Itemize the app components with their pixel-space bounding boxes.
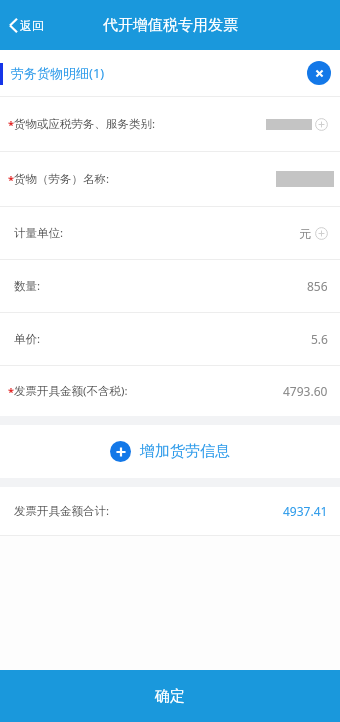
button[interactable]: 单价: (0, 313, 340, 365)
staticText: 5.6 (311, 331, 328, 347)
button[interactable]: * (0, 366, 340, 416)
staticText: 单价: (14, 331, 41, 347)
staticText: 发票开具金额合计: (14, 503, 110, 519)
staticText: 货物或应税劳务、服务类别: (14, 116, 156, 132)
button[interactable]: 确定 (0, 670, 340, 722)
button[interactable]: 发票开具金额合计: (0, 487, 340, 535)
button[interactable]: 数量: (0, 260, 340, 312)
staticText: * (8, 117, 14, 132)
staticText: 856 (307, 278, 328, 294)
staticText: 4793.60 (283, 383, 328, 399)
staticText: * (8, 384, 14, 399)
button[interactable]: 删除 (307, 61, 331, 85)
staticText: 增加货劳信息 (140, 442, 230, 461)
staticText: 劳务货物明细(1) (11, 64, 105, 82)
staticText: 返回 (20, 18, 44, 33)
staticText: 数量: (14, 278, 41, 294)
staticText: 元 (299, 226, 311, 241)
staticText: 货物（劳务）名称: (14, 171, 110, 187)
button[interactable]: 增加货劳信息 (0, 425, 340, 478)
button[interactable]: * (0, 152, 340, 206)
button[interactable]: * (0, 97, 340, 151)
staticText: 4937.41 (283, 503, 328, 519)
button[interactable]: 返回 (0, 11, 54, 40)
staticText: 确定 (155, 687, 185, 706)
staticText: 代开增值税专用发票 (103, 16, 238, 35)
staticText: * (8, 172, 14, 187)
staticText: 计量单位: (14, 225, 64, 241)
staticText: 发票开具金额(不含税): (14, 383, 128, 399)
button[interactable]: 计量单位: (0, 207, 340, 259)
